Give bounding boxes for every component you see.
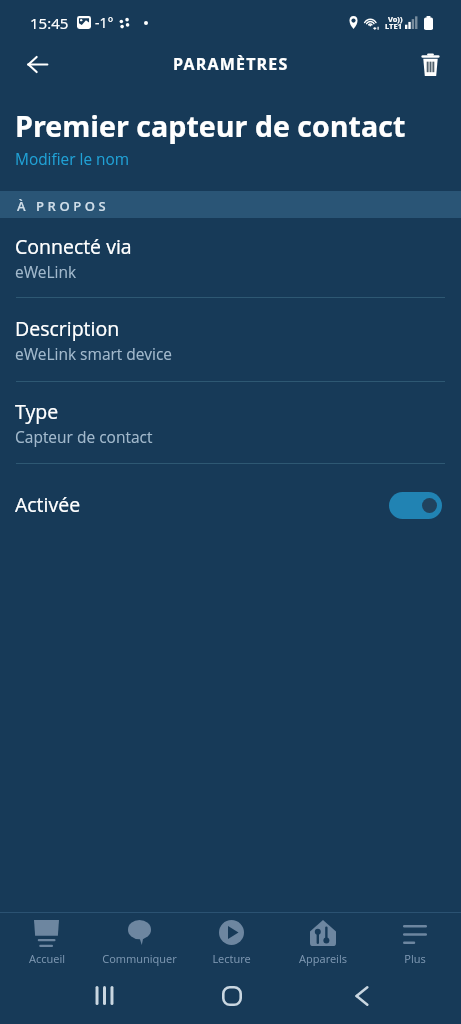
button[interactable]: Plus [369, 913, 461, 977]
button[interactable]: Activée [0, 491, 461, 535]
staticText: Activée [15, 491, 81, 518]
staticText: -1° [95, 13, 114, 32]
staticText: Communiquer [102, 951, 177, 966]
button[interactable]: Type [0, 398, 461, 464]
button[interactable]: Recents [80, 972, 126, 1019]
staticText: 15:45 [30, 13, 69, 33]
staticText: À PROPOS [17, 197, 110, 215]
button[interactable]: Accueil [0, 913, 93, 977]
staticText: PARAMÈTRES [173, 53, 289, 75]
button[interactable]: Delete [404, 40, 456, 88]
staticText: LTE1 [385, 21, 402, 31]
staticText: Vo)) [388, 14, 403, 24]
staticText: Appareils [299, 951, 347, 966]
button[interactable]: Back [338, 972, 384, 1019]
button[interactable]: Modifier le nom [15, 149, 130, 170]
staticText: Accueil [29, 951, 65, 966]
staticText: Plus [404, 951, 426, 966]
button[interactable]: Description [0, 315, 461, 381]
staticText: Type [15, 398, 59, 425]
staticText: Connecté via [15, 233, 132, 260]
staticText: Description [15, 315, 120, 342]
button[interactable]: Connecté via [0, 233, 461, 297]
staticText: eWeLink [15, 261, 77, 282]
staticText: eWeLink smart device [15, 343, 172, 364]
staticText: Lecture [212, 951, 251, 966]
button[interactable]: Lecture [185, 913, 277, 977]
staticText: Capteur de contact [15, 426, 153, 447]
staticText: Modifier le nom [15, 149, 130, 170]
button[interactable]: Back [10, 40, 62, 88]
button[interactable]: Appareils [277, 913, 369, 977]
button[interactable]: Communiquer [93, 913, 185, 977]
staticText: Premier capteur de contact [15, 106, 406, 145]
button[interactable]: Home [209, 972, 255, 1019]
